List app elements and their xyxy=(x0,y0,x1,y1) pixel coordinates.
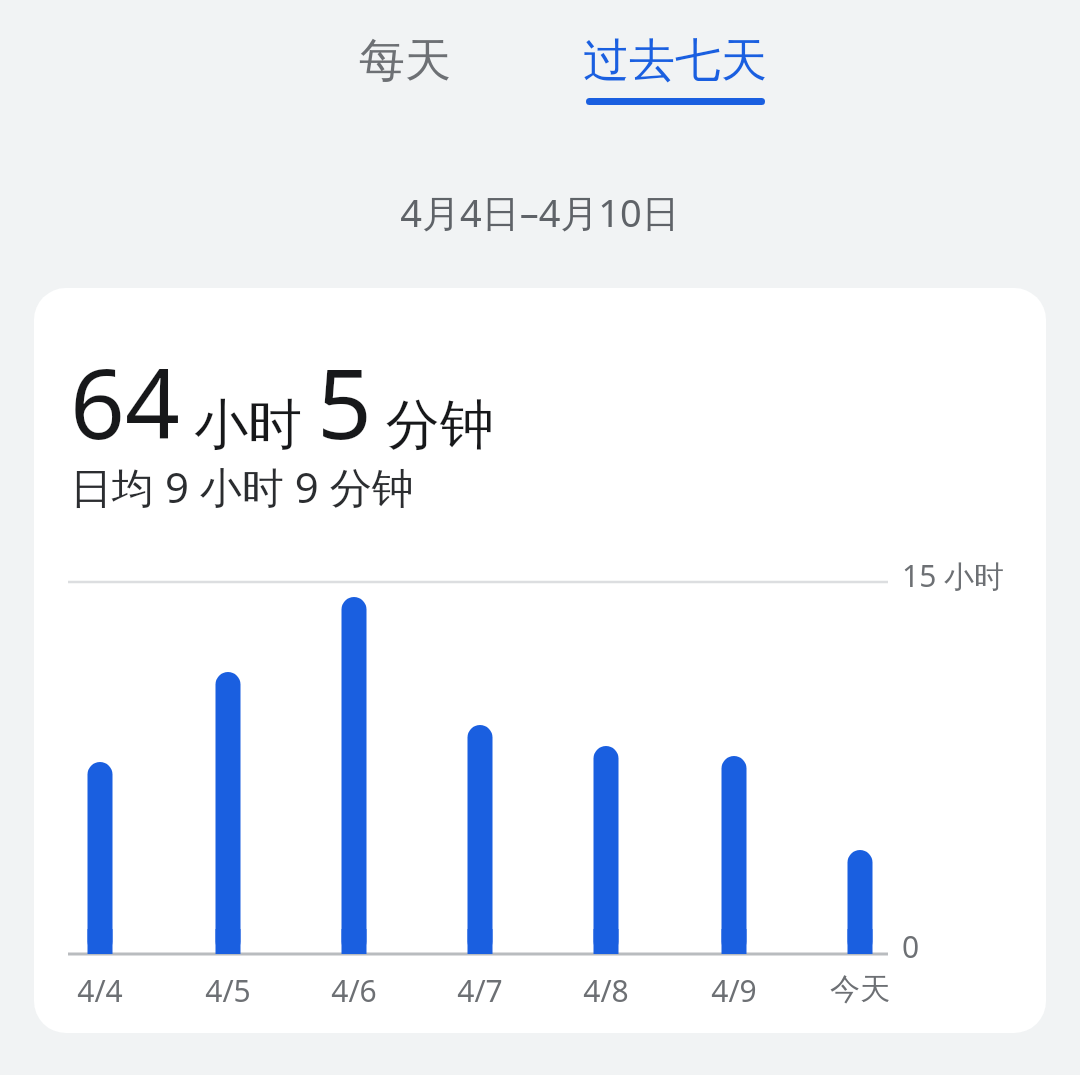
staticText: 4/4 xyxy=(77,970,123,1011)
button[interactable]: 64 xyxy=(34,288,1046,1033)
staticText: 64 xyxy=(70,336,180,467)
button[interactable]: 每天 xyxy=(310,18,500,102)
staticText: 今天 xyxy=(830,970,890,1008)
staticText: 0 xyxy=(902,926,920,967)
staticText: 4/6 xyxy=(331,970,377,1011)
staticText: 过去七天 xyxy=(583,32,767,90)
staticText: 4/7 xyxy=(457,970,503,1011)
button[interactable]: 过去七天 xyxy=(560,18,790,102)
staticText: 5 xyxy=(317,336,372,467)
staticText: 分钟 xyxy=(372,385,495,459)
staticText: 4/9 xyxy=(711,970,757,1011)
staticText: 小时 xyxy=(180,385,317,459)
staticText: 每天 xyxy=(359,32,451,90)
staticText: 4/5 xyxy=(205,970,251,1011)
staticText: 4/8 xyxy=(583,970,629,1011)
staticText: 4月4日–4月10日 xyxy=(400,186,680,238)
staticText: 15 小时 xyxy=(902,555,1005,596)
staticText: 日均 9 小时 9 分钟 xyxy=(70,458,414,515)
